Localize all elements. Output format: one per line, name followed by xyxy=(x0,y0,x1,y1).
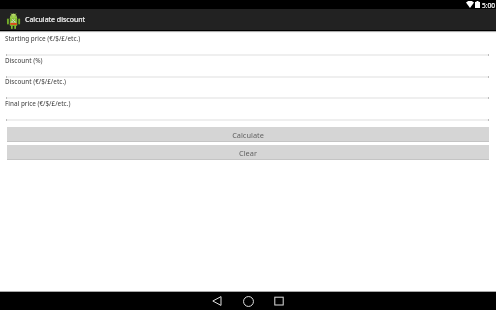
button[interactable]: Clear xyxy=(7,145,489,160)
button[interactable]: Recents xyxy=(269,292,289,310)
staticText: 5:00 xyxy=(482,1,496,10)
staticText: Clear xyxy=(239,148,257,158)
staticText: Calculate xyxy=(232,130,264,140)
button[interactable]: Calculate xyxy=(7,127,489,142)
staticText: Discount (€/$/£/etc.) xyxy=(5,77,67,86)
staticText: Calculate discount xyxy=(25,15,86,25)
staticText: Discount (%) xyxy=(5,56,43,65)
button[interactable]: Home xyxy=(238,292,258,310)
staticText: Starting price (€/$/£/etc.) xyxy=(5,34,81,43)
button[interactable]: Back xyxy=(207,292,227,310)
staticText: Final price (€/$/£/etc.) xyxy=(5,99,71,108)
